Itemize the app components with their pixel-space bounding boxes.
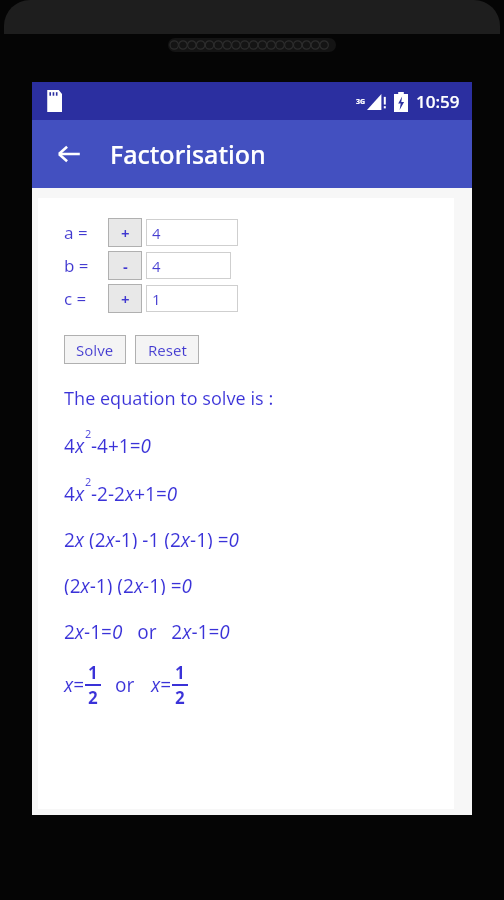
staticText: 1 bbox=[175, 661, 185, 684]
staticText: - bbox=[123, 256, 128, 276]
staticText: 2 bbox=[175, 686, 185, 709]
staticText: x bbox=[75, 481, 85, 503]
staticText: -2-2x+1=0 bbox=[91, 481, 178, 503]
staticText: 4 bbox=[64, 433, 75, 455]
staticText: + bbox=[121, 289, 130, 309]
staticText: or bbox=[115, 672, 135, 698]
staticText: Reset bbox=[148, 340, 187, 360]
staticText: 2 bbox=[85, 426, 92, 441]
staticText: 4 bbox=[64, 481, 75, 503]
staticText: b = bbox=[64, 254, 89, 277]
staticText: c = bbox=[64, 287, 87, 310]
staticText: 2x (2x-1) -1 (2x-1) =0 bbox=[64, 527, 239, 549]
staticText: x bbox=[75, 433, 85, 455]
staticText: + bbox=[121, 223, 130, 243]
button[interactable]: 1 bbox=[146, 285, 238, 312]
button[interactable]: 4 bbox=[146, 219, 238, 246]
staticText: a = bbox=[64, 221, 88, 244]
button[interactable]: Solve bbox=[64, 335, 126, 364]
staticText: 2 bbox=[85, 474, 92, 489]
staticText: 2 bbox=[88, 686, 98, 709]
button[interactable]: + bbox=[108, 218, 142, 247]
button[interactable]: 4 bbox=[146, 252, 231, 279]
staticText: 4 bbox=[152, 223, 161, 243]
staticText: 1 bbox=[152, 289, 161, 309]
staticText: (2x-1) (2x-1) =0 bbox=[64, 573, 193, 595]
button[interactable]: Back bbox=[46, 131, 92, 177]
staticText: Factorisation bbox=[110, 137, 266, 171]
button[interactable]: Reset bbox=[135, 335, 199, 364]
staticText: 3G bbox=[356, 97, 366, 107]
staticText: 10:59 bbox=[416, 90, 460, 113]
staticText: -4+1=0 bbox=[91, 433, 152, 455]
staticText: 4 bbox=[152, 256, 161, 276]
staticText: x= bbox=[151, 672, 172, 698]
button[interactable]: + bbox=[108, 284, 142, 313]
staticText: 2x-1=0 or 2x-1=0 bbox=[64, 619, 230, 641]
staticText: Solve bbox=[76, 340, 114, 360]
staticText: x= bbox=[64, 672, 85, 698]
staticText: 1 bbox=[88, 661, 98, 684]
staticText: The equation to solve is : bbox=[64, 386, 274, 411]
button[interactable]: - bbox=[108, 251, 142, 280]
